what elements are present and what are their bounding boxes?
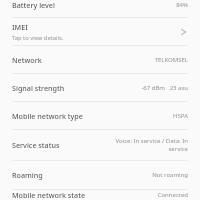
staticText: Roaming (12, 170, 107, 180)
staticText: Service status (12, 140, 93, 150)
staticText: TELKOMSEL (111, 56, 188, 64)
staticText: Mobile network type (12, 111, 124, 121)
staticText: Signal strength (12, 83, 95, 93)
button[interactable]: Roaming (0, 161, 200, 189)
button[interactable]: Mobile network type (0, 102, 200, 129)
staticText: IMEI (12, 22, 28, 32)
button[interactable]: Signal strength (0, 74, 200, 101)
button[interactable]: Battery level (0, 0, 200, 17)
staticText: Battery level (12, 0, 176, 10)
staticText: 84% (176, 1, 188, 9)
staticText: Network (12, 55, 107, 65)
staticText: Tap to view details. (12, 34, 64, 42)
other: View details (178, 26, 190, 38)
button[interactable]: Service status (0, 130, 200, 160)
button[interactable]: Network (0, 46, 200, 73)
staticText: Not roaming (111, 171, 188, 179)
staticText: Voice: In service / Data: In service (97, 137, 188, 153)
staticText: HSPA (128, 112, 188, 120)
staticText: -67 dBm 23 asu (99, 84, 188, 92)
button[interactable]: Mobile network state (0, 190, 200, 200)
staticText: Connected (157, 191, 188, 199)
button[interactable]: IMEI (0, 18, 200, 45)
staticText: Mobile network state (12, 190, 157, 200)
